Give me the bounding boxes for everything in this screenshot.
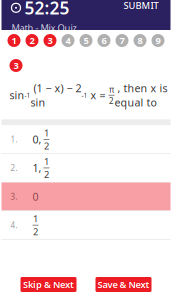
staticText: 0 bbox=[32, 189, 38, 204]
staticText: 8 bbox=[137, 34, 142, 47]
staticText: Save & Next bbox=[97, 278, 149, 291]
staticText: 1, bbox=[32, 161, 41, 175]
button[interactable]: 6 bbox=[95, 34, 113, 47]
button[interactable]: Save & Next bbox=[95, 277, 151, 292]
staticText: , then x is equal to bbox=[114, 81, 167, 109]
button[interactable]: SUBMIT bbox=[121, 0, 160, 15]
staticText: 5 bbox=[83, 34, 88, 47]
staticText: -1 bbox=[24, 91, 30, 100]
staticText: 1 bbox=[44, 127, 49, 139]
staticText: 2. bbox=[10, 163, 17, 173]
staticText: 7 bbox=[119, 34, 124, 47]
staticText: 4. bbox=[10, 220, 17, 230]
staticText: 4 bbox=[65, 34, 70, 47]
staticText: 3 bbox=[13, 59, 18, 72]
staticText: 1 bbox=[33, 212, 38, 225]
button[interactable]: 4 bbox=[59, 34, 77, 47]
staticText: 1 bbox=[11, 34, 16, 47]
staticText: π bbox=[109, 84, 114, 95]
staticText: sin bbox=[9, 88, 24, 102]
staticText: 3 bbox=[47, 34, 52, 47]
staticText: 52:25 bbox=[24, 0, 69, 19]
staticText: 2 bbox=[33, 225, 38, 238]
button[interactable]: 9 bbox=[149, 34, 167, 47]
staticText: x = bbox=[87, 88, 108, 102]
button[interactable]: 8 bbox=[131, 34, 149, 47]
button[interactable]: 7 bbox=[113, 34, 131, 47]
staticText: 1. bbox=[10, 134, 17, 145]
staticText: 1 bbox=[44, 155, 49, 168]
staticText: 9 bbox=[155, 34, 160, 47]
staticText: Math - Mix Quiz bbox=[11, 21, 76, 34]
button[interactable]: 3. bbox=[1, 182, 170, 210]
staticText: 0, bbox=[32, 132, 41, 146]
button[interactable]: 1 bbox=[5, 34, 23, 47]
staticText: 3. bbox=[10, 191, 17, 202]
button[interactable]: 2 bbox=[23, 34, 41, 47]
staticText: SUBMIT bbox=[123, 0, 158, 12]
staticText: -1 bbox=[81, 91, 87, 100]
button[interactable]: 4. bbox=[1, 211, 170, 239]
staticText: 2 bbox=[44, 168, 49, 181]
staticText: 2 bbox=[109, 95, 114, 106]
staticText: Skip & Next bbox=[23, 278, 74, 291]
staticText: 2 bbox=[44, 140, 49, 152]
staticText: 6 bbox=[101, 34, 106, 47]
button[interactable]: Skip & Next bbox=[20, 277, 76, 292]
button[interactable]: 2. bbox=[1, 154, 170, 182]
button[interactable]: 1. bbox=[1, 125, 170, 153]
staticText: 2 bbox=[29, 34, 34, 47]
button[interactable]: 3 bbox=[41, 34, 59, 47]
button[interactable]: 5 bbox=[77, 34, 95, 47]
staticText: (1 − x) − 2 sin bbox=[30, 81, 81, 109]
